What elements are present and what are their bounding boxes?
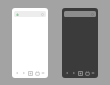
- button[interactable]: Search or type address: [12, 8, 48, 78]
- button[interactable]: More options: [40, 70, 46, 76]
- button[interactable]: Home: [84, 70, 90, 76]
- button[interactable]: Forward: [71, 70, 77, 76]
- button[interactable]: Forward: [21, 70, 27, 76]
- button[interactable]: Search or type address: [62, 8, 98, 78]
- button[interactable]: Back: [64, 70, 70, 76]
- button[interactable]: Home: [34, 70, 40, 76]
- button[interactable]: Search or type address: [64, 11, 96, 17]
- button[interactable]: Tabs: [27, 70, 33, 76]
- button[interactable]: Back: [14, 70, 20, 76]
- button[interactable]: More options: [90, 70, 96, 76]
- button[interactable]: Tabs: [77, 70, 83, 76]
- button[interactable]: Search or type address: [14, 11, 46, 17]
